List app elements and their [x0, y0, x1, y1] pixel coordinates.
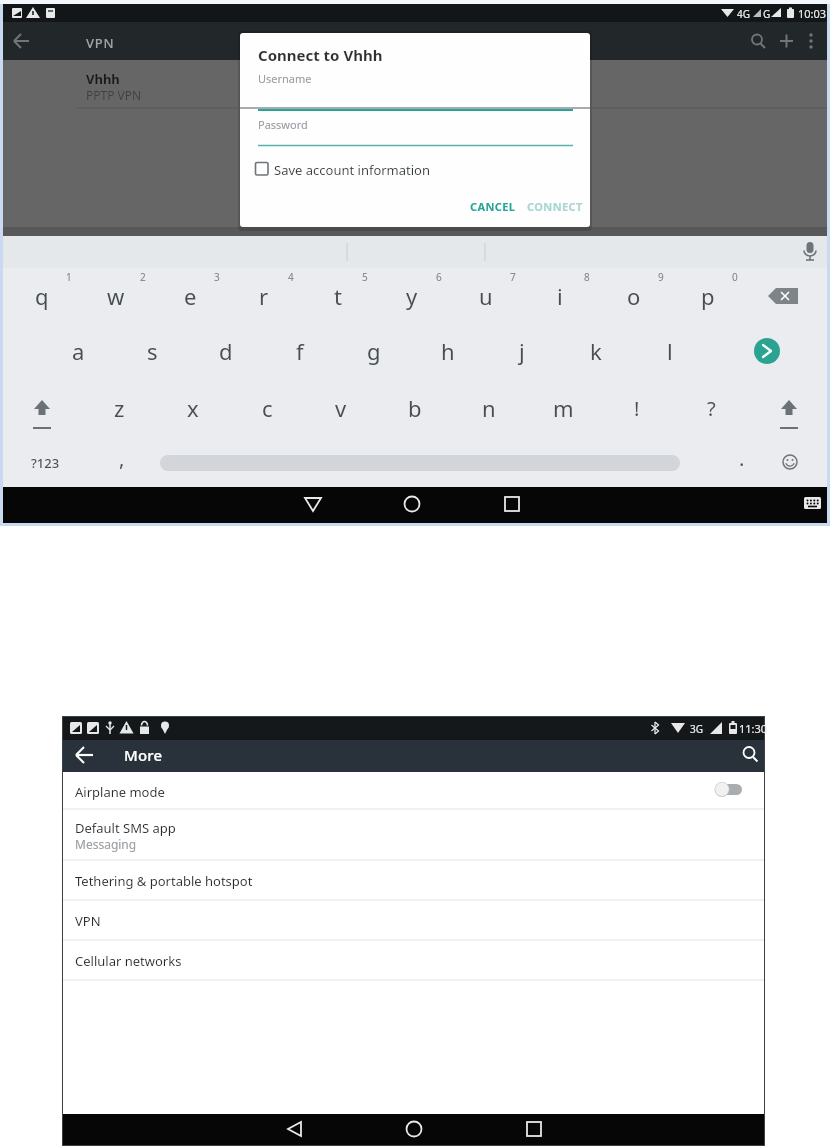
staticText: 5	[362, 270, 368, 284]
staticText: 3G	[690, 722, 703, 736]
button[interactable]: d	[202, 330, 250, 372]
staticText: 10:03	[798, 6, 827, 21]
button[interactable]: s	[128, 330, 176, 372]
button[interactable]: .	[718, 437, 766, 479]
staticText: 4	[288, 270, 294, 284]
staticText: r	[259, 281, 269, 311]
staticText: m	[553, 393, 574, 423]
staticText: Tethering & portable hotspot	[75, 872, 253, 890]
button[interactable]: m	[539, 387, 587, 429]
staticText: h	[441, 336, 455, 366]
button[interactable]: p	[684, 275, 732, 317]
staticText: Password	[258, 117, 308, 132]
button[interactable]: j	[498, 330, 546, 372]
staticText: c	[262, 393, 273, 423]
staticText: !	[634, 395, 640, 422]
staticText: p	[701, 281, 715, 311]
staticText: a	[72, 336, 85, 366]
button[interactable]	[63, 809, 764, 860]
staticText: Username	[258, 71, 312, 86]
staticText: VPN	[86, 34, 115, 52]
button[interactable]: o	[610, 275, 658, 317]
button[interactable]	[3, 60, 827, 108]
staticText: b	[408, 393, 422, 423]
button[interactable]: t	[314, 275, 362, 317]
button[interactable]	[63, 740, 764, 772]
staticText: CONNECT	[527, 199, 583, 214]
staticText: n	[482, 393, 496, 423]
staticText: 6	[436, 270, 442, 284]
button[interactable]	[63, 772, 764, 809]
staticText: PPTP VPN	[86, 87, 142, 103]
button[interactable]: ?	[687, 387, 735, 429]
button[interactable]: i	[536, 275, 584, 317]
staticText: g	[367, 336, 381, 366]
staticText: f	[296, 336, 304, 366]
staticText: CANCEL	[470, 199, 516, 214]
staticText: Save account information	[274, 161, 431, 179]
button[interactable]: q	[18, 275, 66, 317]
button[interactable]: b	[391, 387, 439, 429]
staticText: d	[219, 336, 233, 366]
button[interactable]: v	[317, 387, 365, 429]
button[interactable]: n	[465, 387, 513, 429]
staticText: Cellular networks	[75, 952, 182, 970]
button[interactable]: e	[166, 275, 214, 317]
staticText: x	[187, 393, 199, 423]
button[interactable]: a	[54, 330, 102, 372]
staticText: 0	[732, 270, 738, 284]
button[interactable]: g	[350, 330, 398, 372]
staticText: v	[335, 393, 347, 423]
button[interactable]	[160, 452, 680, 474]
button[interactable]: l	[646, 330, 694, 372]
button[interactable]: f	[276, 330, 324, 372]
button[interactable]: CONNECT	[522, 195, 588, 217]
button[interactable]	[63, 900, 764, 940]
button[interactable]: u	[462, 275, 510, 317]
button[interactable]	[63, 860, 764, 900]
button[interactable]: x	[169, 387, 217, 429]
button[interactable]: z	[95, 387, 143, 429]
staticText: 3	[214, 270, 220, 284]
staticText: o	[627, 281, 641, 311]
staticText: Messaging	[75, 836, 137, 852]
staticText: l	[667, 336, 673, 366]
staticText: z	[114, 393, 125, 423]
staticText: q	[35, 281, 49, 311]
staticText: 11:30	[739, 721, 768, 736]
staticText: j	[519, 336, 525, 366]
staticText: u	[479, 281, 493, 311]
button[interactable]: k	[572, 330, 620, 372]
staticText: VPN	[75, 912, 101, 930]
staticText: 7	[510, 270, 516, 284]
button[interactable]: r	[240, 275, 288, 317]
staticText: 4G	[737, 7, 750, 21]
button[interactable]	[3, 22, 827, 60]
button[interactable]: y	[388, 275, 436, 317]
staticText: ?123	[31, 454, 60, 472]
staticText: ,	[119, 445, 125, 472]
staticText: Default SMS app	[75, 819, 176, 837]
staticText: y	[406, 281, 418, 311]
staticText: 9	[658, 270, 664, 284]
button[interactable]	[250, 156, 450, 182]
staticText: Connect to Vhhh	[258, 45, 383, 65]
staticText: More	[124, 745, 163, 765]
button[interactable]: w	[92, 275, 140, 317]
staticText: w	[107, 281, 125, 311]
staticText: s	[147, 336, 158, 366]
button[interactable]: ,	[98, 437, 146, 479]
staticText: Vhhh	[86, 70, 120, 88]
button[interactable]: !	[613, 387, 661, 429]
staticText: 1	[66, 270, 72, 284]
button[interactable]: h	[424, 330, 472, 372]
button[interactable]	[63, 940, 764, 980]
button[interactable]: ?123	[20, 448, 70, 478]
staticText: G	[763, 7, 771, 21]
staticText: 2	[140, 270, 146, 284]
staticText: Airplane mode	[75, 783, 165, 801]
staticText: e	[184, 281, 197, 311]
button[interactable]: CANCEL	[462, 195, 524, 217]
button[interactable]: c	[243, 387, 291, 429]
staticText: .	[739, 445, 745, 472]
